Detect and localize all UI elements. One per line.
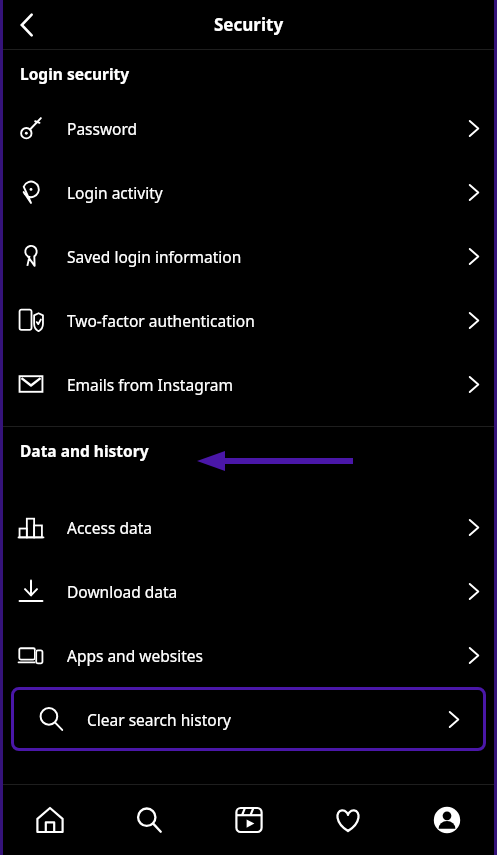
button[interactable]: Two-factor authentication xyxy=(0,288,497,352)
staticText: Security xyxy=(214,13,284,36)
button[interactable]: Apps and websites xyxy=(0,623,497,687)
staticText: Login activity xyxy=(67,182,163,203)
staticText: Emails from Instagram xyxy=(67,374,233,395)
button[interactable]: Profile xyxy=(416,789,478,851)
button[interactable]: Reels xyxy=(218,789,280,851)
staticText: Download data xyxy=(67,581,178,602)
button[interactable]: Download data xyxy=(0,559,497,623)
button[interactable]: Access data xyxy=(0,495,497,559)
staticText: Two-factor authentication xyxy=(67,310,255,331)
staticText: Apps and websites xyxy=(67,645,203,666)
button[interactable]: Emails from Instagram xyxy=(0,352,497,416)
button[interactable]: Search xyxy=(118,789,180,851)
staticText: Clear search history xyxy=(87,709,231,730)
staticText: Access data xyxy=(67,517,152,538)
button[interactable]: Home xyxy=(19,789,81,851)
button[interactable]: Clear search history xyxy=(11,687,486,751)
button[interactable]: Password xyxy=(0,96,497,160)
staticText: Data and history xyxy=(20,440,149,461)
button[interactable]: Login activity xyxy=(0,160,497,224)
button[interactable]: Back xyxy=(5,3,49,47)
staticText: Password xyxy=(67,118,138,139)
staticText: Saved login information xyxy=(67,246,242,267)
button[interactable]: Activity xyxy=(317,789,379,851)
button[interactable]: Saved login information xyxy=(0,224,497,288)
staticText: Login security xyxy=(20,63,130,84)
